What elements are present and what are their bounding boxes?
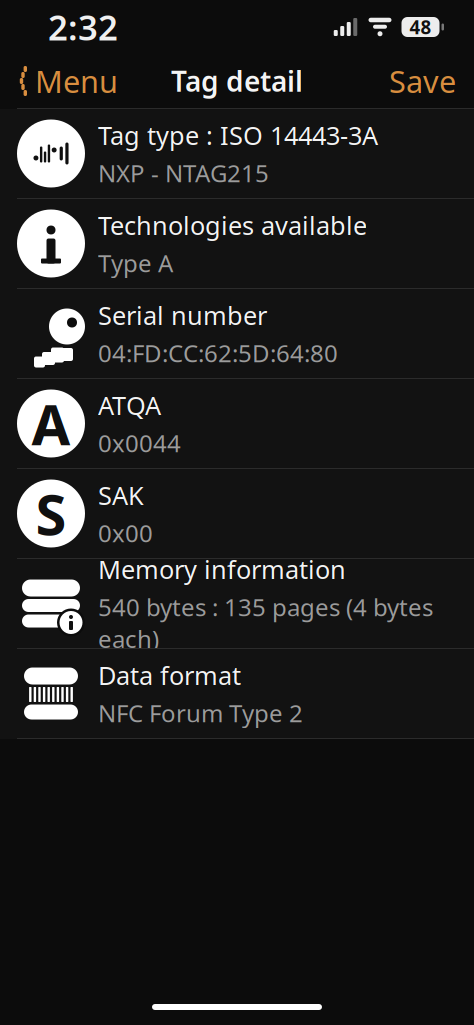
staticText: Serial number [98,298,267,332]
button[interactable]: Menu [0,54,132,108]
staticText: Save [389,61,456,101]
staticText: NFC Forum Type 2 [98,697,303,729]
button[interactable]: Serial number [0,289,474,379]
staticText: S [35,476,66,551]
staticText: 540 bytes : 135 pages (4 bytes each) [98,591,433,655]
button[interactable]: Memory information [0,559,474,649]
staticText: Menu [35,61,118,101]
button[interactable]: A [0,379,474,469]
staticText: 0x0044 [98,427,181,459]
button[interactable]: S [0,469,474,559]
staticText: ATQA [98,388,161,422]
staticText: Data format [98,658,241,692]
staticText: Tag detail [171,62,303,100]
staticText: Memory information [98,552,346,586]
staticText: 2:32 [48,4,118,50]
button[interactable]: Technologies available [0,199,474,289]
staticText: Tag type : ISO 14443-3A [98,118,378,152]
staticText: SAK [98,478,144,512]
button[interactable]: Tag type : ISO 14443-3A [0,109,474,199]
staticText: Technologies available [98,208,367,242]
staticText: Type A [98,247,173,279]
button[interactable]: Data format [0,649,474,739]
staticText: A [31,386,70,461]
staticText: NXP - NTAG215 [98,157,269,189]
staticText: 0x00 [98,517,153,549]
staticText: 04:FD:CC:62:5D:64:80 [98,337,338,369]
staticText: 48 [409,15,431,39]
button[interactable]: Save [371,54,474,108]
